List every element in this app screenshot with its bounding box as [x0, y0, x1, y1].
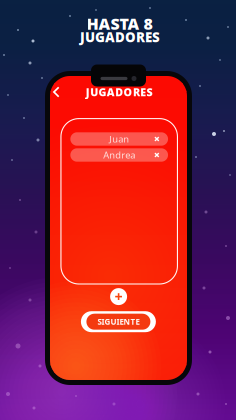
staticText: SIGUIENTE: [97, 316, 139, 327]
button[interactable]: SIGUIENTE: [81, 311, 156, 332]
button[interactable]: Remove Andrea: [151, 149, 162, 161]
staticText: JUGADORES: [80, 28, 160, 46]
staticText: HASTA 8: [86, 13, 152, 34]
staticText: Juan: [109, 133, 129, 145]
button[interactable]: Add player: [110, 288, 127, 305]
staticText: Andrea: [103, 149, 135, 161]
staticText: JUGADORES: [86, 85, 153, 99]
button[interactable]: Remove Juan: [151, 133, 162, 145]
button[interactable]: Back: [49, 83, 63, 100]
